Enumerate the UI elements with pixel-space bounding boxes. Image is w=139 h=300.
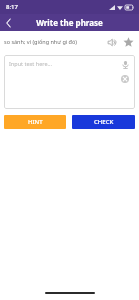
button[interactable]: Clear text	[119, 73, 131, 85]
staticText: HINT	[28, 118, 43, 126]
staticText: Input text here...	[9, 60, 52, 67]
button[interactable]: HINT	[4, 115, 66, 129]
button[interactable]: CHECK	[72, 115, 135, 129]
button[interactable]: Input text here...	[4, 55, 135, 109]
staticText: CHECK	[94, 118, 114, 126]
staticText: 8:17	[6, 3, 18, 11]
staticText: Write the phrase	[36, 17, 103, 28]
button[interactable]: Back	[0, 15, 16, 31]
button[interactable]: Voice input	[119, 58, 131, 70]
staticText: so sánh; ví (giống như gì đó)	[4, 38, 105, 45]
button[interactable]: Play audio	[105, 35, 119, 49]
button[interactable]: Favorite	[121, 35, 135, 49]
